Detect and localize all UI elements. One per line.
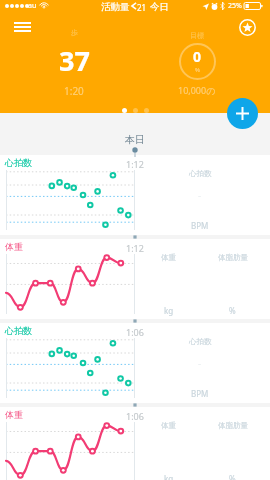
staticText: 1:20 — [64, 84, 84, 98]
staticText: 1:06 — [126, 410, 144, 422]
staticText: 心拍数 — [5, 157, 32, 168]
staticText: 体脂肪量 — [218, 421, 248, 430]
staticText: 心拍数 — [189, 169, 212, 178]
staticText: 21 — [137, 2, 147, 13]
staticText: 10,000の — [178, 84, 216, 96]
staticText: BPM — [191, 388, 209, 399]
staticText: 心拍数 — [5, 325, 32, 336]
staticText: 1:12 — [126, 158, 144, 170]
staticText: 体重 — [5, 241, 23, 252]
staticText: 1:06 — [126, 326, 144, 338]
staticText: 体重 — [161, 253, 176, 262]
staticText: 体重 — [5, 409, 23, 420]
button[interactable]: Add record — [227, 98, 258, 129]
staticText: - — [198, 188, 202, 202]
staticText: 1:12 — [126, 242, 144, 254]
staticText: % — [229, 473, 236, 480]
staticText: 今日 — [150, 1, 169, 13]
button[interactable]: Goal settings — [233, 13, 261, 41]
staticText: BPM — [191, 220, 209, 231]
staticText: 25% — [228, 1, 242, 11]
staticText: 0 — [193, 47, 202, 66]
staticText: 活動量 — [101, 1, 130, 13]
staticText: 本日 — [125, 133, 145, 146]
staticText: 体脂肪量 — [218, 253, 248, 262]
staticText: - — [198, 356, 202, 370]
staticText: 目標 — [190, 31, 204, 40]
staticText: 心拍数 — [189, 337, 212, 346]
staticText: 37 — [59, 42, 90, 79]
staticText: 体重 — [161, 421, 176, 430]
staticText: % — [195, 66, 200, 74]
staticText: au — [28, 1, 37, 11]
staticText: % — [229, 305, 236, 316]
staticText: 歩 — [71, 28, 78, 37]
staticText: kg — [164, 473, 174, 480]
staticText: kg — [164, 305, 174, 316]
button[interactable]: Menu — [8, 16, 37, 38]
